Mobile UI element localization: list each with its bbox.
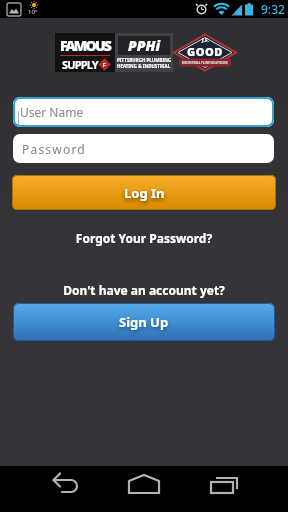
staticText: User Name <box>20 104 84 120</box>
button[interactable]: Forgot Your Password? <box>0 230 288 246</box>
staticText: Don't have an account yet? <box>0 282 288 298</box>
button[interactable] <box>125 466 163 512</box>
staticText: SUPPLY <box>62 57 98 72</box>
button[interactable] <box>48 466 86 512</box>
button[interactable]: User Name <box>13 97 274 127</box>
staticText: Sign Up <box>119 313 169 331</box>
staticText: J.F. <box>202 37 209 44</box>
button[interactable]: Log In <box>12 175 276 210</box>
staticText: HEATING & INDUSTRIAL <box>117 63 171 69</box>
staticText: GOOD <box>187 44 223 59</box>
button[interactable]: Sign Up <box>13 303 275 341</box>
staticText: F <box>98 59 110 71</box>
staticText: INDUSTRIAL FLOW SOLUTIONS <box>182 61 228 65</box>
staticText: PPHi <box>128 36 160 55</box>
staticText: PITTSBURGH PLUMBING <box>117 57 172 63</box>
staticText: 9:32 <box>261 1 285 17</box>
button[interactable]: Password <box>13 134 274 163</box>
staticText: Password <box>22 141 86 157</box>
staticText: FAMOUS <box>60 36 111 55</box>
staticText: Log In <box>124 184 165 202</box>
staticText: 10° <box>28 8 38 16</box>
button[interactable] <box>206 466 244 512</box>
